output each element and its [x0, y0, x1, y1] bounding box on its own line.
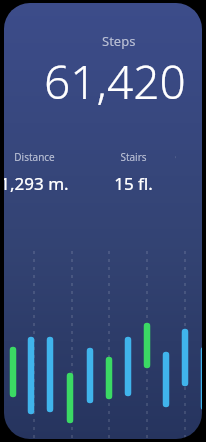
button[interactable]: Calories — [175, 150, 176, 195]
staticText: Calories — [175, 150, 176, 164]
staticText: 61,420 — [44, 50, 186, 112]
button[interactable]: Steps — [4, 3, 202, 439]
staticText: 1,293 m. — [4, 172, 69, 195]
button[interactable]: Stairs — [91, 150, 175, 195]
staticText: Stairs — [120, 150, 147, 164]
staticText: 15 fl. — [114, 172, 153, 195]
button[interactable]: 61,420 — [4, 50, 202, 112]
button[interactable]: Distance — [4, 150, 91, 195]
button[interactable]: Steps — [4, 32, 202, 50]
staticText: Steps — [102, 32, 136, 50]
staticText: Distance — [14, 150, 55, 164]
